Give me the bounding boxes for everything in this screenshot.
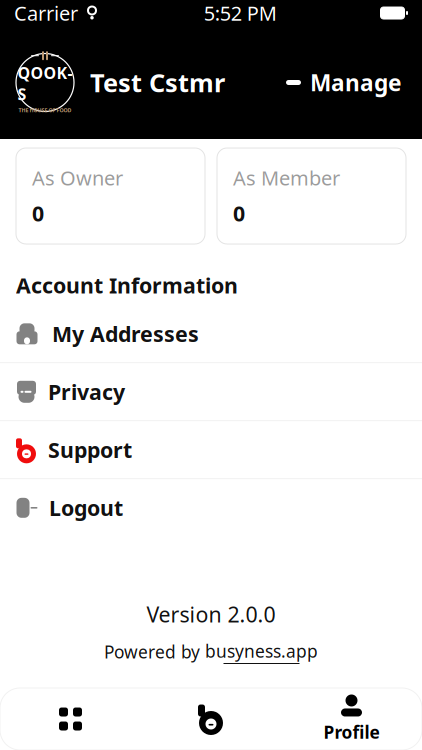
button[interactable]: My Addresses bbox=[0, 305, 422, 362]
staticText: 5:52 PM bbox=[204, 0, 277, 26]
button[interactable]: Privacy bbox=[0, 363, 422, 420]
staticText: Test Cstmr bbox=[90, 66, 225, 99]
staticText: Profile bbox=[323, 720, 379, 743]
button[interactable]: Support bbox=[0, 421, 422, 478]
button[interactable]: Dashboard bbox=[0, 688, 140, 750]
staticText: Logout bbox=[49, 494, 123, 522]
staticText: 0 bbox=[233, 199, 245, 227]
button[interactable]: Manage bbox=[281, 59, 406, 105]
button[interactable]: Logout bbox=[0, 479, 422, 536]
button[interactable]: Home bbox=[140, 688, 281, 750]
staticText: As Owner bbox=[32, 165, 123, 191]
staticText: busyness.app bbox=[205, 639, 318, 662]
staticText: 0 bbox=[32, 199, 44, 227]
staticText: Manage bbox=[310, 67, 402, 97]
staticText: Powered by bbox=[104, 640, 200, 663]
staticText: Privacy bbox=[48, 378, 125, 406]
button[interactable]: Profile bbox=[281, 688, 421, 750]
staticText: QOOKS bbox=[17, 62, 72, 105]
button[interactable]: Powered by bbox=[104, 639, 318, 664]
staticText: THE HOUSE OF FOOD bbox=[18, 107, 71, 114]
staticText: Version 2.0.0 bbox=[146, 600, 275, 628]
staticText: As Member bbox=[233, 165, 340, 191]
staticText: Carrier bbox=[14, 0, 78, 26]
staticText: Account Information bbox=[16, 271, 238, 299]
staticText: Support bbox=[48, 436, 132, 464]
staticText: My Addresses bbox=[52, 320, 199, 348]
